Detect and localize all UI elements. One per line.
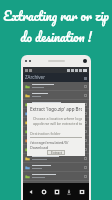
staticText: ZArchiver — [25, 74, 46, 80]
staticText: Extracting rar or zip — [3, 5, 109, 26]
button[interactable] — [25, 82, 87, 90]
staticText: Choose a location where logo and appdir.… — [33, 116, 82, 126]
button[interactable] — [25, 100, 87, 108]
button[interactable]: Screenshot — [76, 186, 87, 197]
button[interactable] — [25, 163, 87, 171]
button[interactable] — [25, 154, 87, 162]
staticText: /storage/emulated/0/ Download — [30, 140, 69, 150]
button[interactable] — [25, 181, 87, 189]
button[interactable]: Extract — [47, 150, 65, 155]
button[interactable] — [25, 91, 87, 99]
button[interactable]: Back — [25, 186, 36, 197]
button[interactable]: Download — [63, 186, 74, 197]
button[interactable] — [25, 145, 87, 153]
button[interactable]: Recent apps — [51, 186, 62, 197]
staticText: Extract — [51, 150, 62, 155]
button[interactable] — [25, 127, 87, 135]
button[interactable] — [25, 109, 87, 117]
button[interactable] — [25, 172, 87, 180]
staticText: Destination folder — [30, 131, 61, 136]
button[interactable]: Home — [38, 186, 49, 197]
button[interactable] — [25, 136, 87, 144]
staticText: Extract 'logo.zip' app Browse — [30, 106, 82, 112]
staticText: do desination ! — [20, 26, 92, 47]
button[interactable] — [25, 118, 87, 126]
